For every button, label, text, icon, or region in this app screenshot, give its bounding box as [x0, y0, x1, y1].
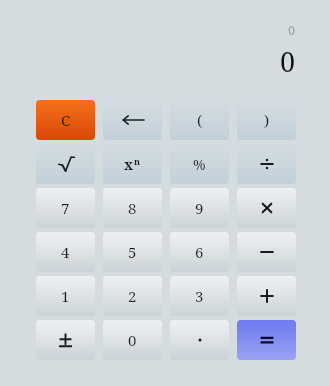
button[interactable]: 8: [103, 188, 162, 228]
staticText: 2: [128, 286, 137, 306]
staticText: 3: [195, 286, 204, 306]
staticText: 0: [279, 43, 295, 80]
button[interactable]: Plus minus: [36, 320, 95, 360]
button[interactable]: 3: [170, 276, 229, 316]
button[interactable]: 0: [103, 320, 162, 360]
button[interactable]: C: [36, 100, 95, 140]
button[interactable]: Decimal point: [170, 320, 229, 360]
staticText: 4: [61, 242, 70, 262]
staticText: 0: [128, 330, 137, 350]
button[interactable]: ): [237, 100, 296, 140]
staticText: 5: [128, 242, 137, 262]
button[interactable]: Divide: [237, 144, 296, 184]
button[interactable]: (: [170, 100, 229, 140]
staticText: 0: [288, 22, 295, 38]
button[interactable]: Minus: [237, 232, 296, 272]
staticText: %: [193, 155, 206, 174]
button[interactable]: 5: [103, 232, 162, 272]
button[interactable]: Power: [103, 144, 162, 184]
staticText: x: [124, 155, 134, 174]
button[interactable]: 2: [103, 276, 162, 316]
button[interactable]: Multiply: [237, 188, 296, 228]
button[interactable]: Square root: [36, 144, 95, 184]
staticText: 1: [61, 286, 70, 306]
button[interactable]: Plus: [237, 276, 296, 316]
button[interactable]: 9: [170, 188, 229, 228]
button[interactable]: Backspace: [103, 100, 162, 140]
staticText: ): [264, 110, 270, 130]
staticText: C: [61, 110, 71, 130]
button[interactable]: 1: [36, 276, 95, 316]
staticText: 9: [195, 198, 204, 218]
button[interactable]: 4: [36, 232, 95, 272]
staticText: 8: [128, 198, 137, 218]
staticText: 6: [195, 242, 204, 262]
staticText: n: [134, 155, 141, 167]
staticText: (: [197, 110, 203, 130]
staticText: 7: [61, 198, 70, 218]
button[interactable]: 7: [36, 188, 95, 228]
button[interactable]: Equals: [237, 320, 296, 360]
button[interactable]: 6: [170, 232, 229, 272]
button[interactable]: %: [170, 144, 229, 184]
